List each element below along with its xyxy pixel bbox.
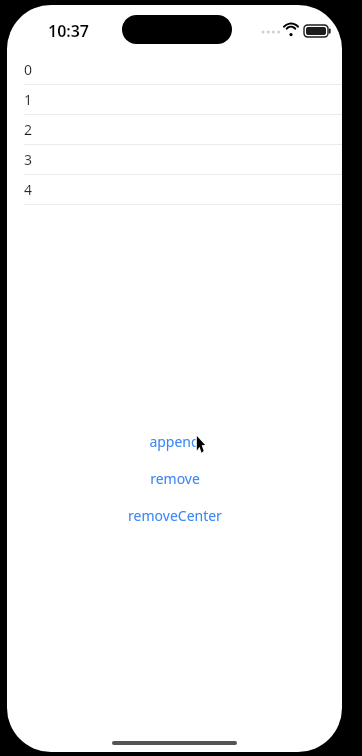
button[interactable]: 4 [7, 175, 342, 205]
button[interactable]: remove [7, 460, 342, 497]
button[interactable]: 2 [7, 115, 342, 145]
staticText: append [149, 432, 200, 451]
button[interactable]: 3 [7, 145, 342, 175]
staticText: 0 [24, 60, 33, 79]
button[interactable]: removeCenter [7, 497, 342, 534]
staticText: 3 [24, 150, 33, 169]
staticText: 4 [24, 180, 33, 199]
staticText: 1 [24, 90, 33, 109]
button[interactable]: 1 [7, 85, 342, 115]
button[interactable]: 0 [7, 55, 342, 85]
staticText: 10:37 [48, 20, 90, 42]
staticText: removeCenter [128, 506, 222, 525]
button[interactable]: append [7, 423, 342, 460]
staticText: remove [150, 469, 200, 488]
staticText: 2 [24, 120, 33, 139]
